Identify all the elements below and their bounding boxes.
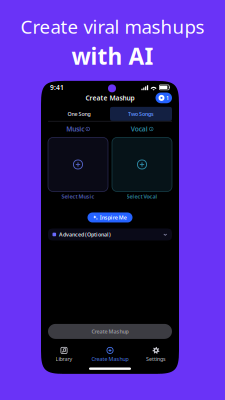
- button[interactable]: One Song: [48, 107, 110, 121]
- staticText: Create Mashup: [91, 328, 128, 335]
- button[interactable]: Library: [41, 347, 87, 362]
- button[interactable]: Create Mashup: [48, 324, 172, 339]
- staticText: Create viral mashups: [20, 14, 204, 39]
- staticText: with AI: [71, 41, 153, 71]
- staticText: 9:41: [50, 83, 64, 92]
- button[interactable]: Advanced (Optional): [48, 228, 172, 240]
- staticText: Settings: [146, 355, 166, 362]
- staticText: 1: [166, 94, 169, 101]
- staticText: Music: [66, 125, 84, 133]
- staticText: Advanced (Optional): [59, 231, 111, 238]
- staticText: Inspire Me: [100, 214, 127, 221]
- staticText: Create Mashup: [85, 93, 134, 102]
- button[interactable]: Create Mashup: [87, 347, 133, 362]
- button[interactable]: Two Songs: [110, 107, 172, 121]
- button[interactable]: Inspire Me: [87, 212, 132, 222]
- staticText: One Song: [67, 110, 90, 117]
- button[interactable]: [48, 137, 108, 191]
- staticText: Vocal: [131, 125, 148, 133]
- button[interactable]: [112, 137, 172, 191]
- staticText: Library: [55, 355, 72, 362]
- staticText: Select Music: [61, 193, 94, 200]
- staticText: Select Vocal: [126, 193, 157, 200]
- button[interactable]: Settings: [133, 347, 179, 362]
- button[interactable]: 1: [155, 93, 172, 103]
- staticText: Create Mashup: [91, 355, 128, 362]
- staticText: Two Songs: [128, 110, 154, 117]
